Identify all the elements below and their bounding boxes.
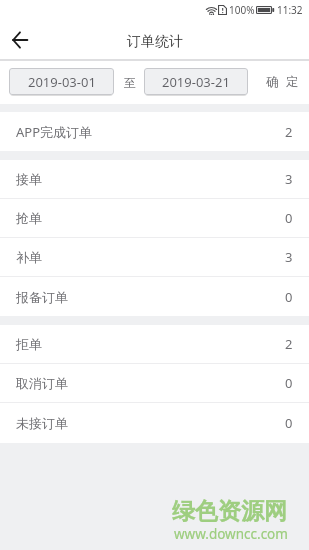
staticText: 3 — [285, 170, 293, 188]
button[interactable]: APP完成订单 — [0, 112, 309, 151]
button[interactable]: 报备订单 — [0, 277, 309, 316]
button[interactable]: 取消订单 — [0, 364, 309, 403]
staticText: 取消订单 — [16, 375, 68, 391]
button[interactable]: 未接订单 — [0, 403, 309, 443]
staticText: 至 — [124, 75, 136, 90]
staticText: 2019-03-01 — [28, 73, 96, 91]
staticText: 订单统计 — [127, 33, 183, 51]
staticText: 拒单 — [16, 336, 42, 352]
staticText: 未接订单 — [16, 415, 68, 431]
staticText: 3 — [285, 248, 293, 266]
button[interactable]: 接单 — [0, 160, 309, 199]
button[interactable]: Back — [8, 28, 32, 52]
staticText: 2 — [285, 335, 293, 353]
staticText: 绿色资源网 — [172, 497, 287, 526]
staticText: 0 — [285, 414, 293, 432]
staticText: 100% — [229, 3, 255, 17]
button[interactable]: 2019-03-01 — [9, 68, 114, 95]
staticText: 抢单 — [16, 210, 42, 226]
staticText: 定 — [286, 74, 299, 90]
staticText: APP完成订单 — [16, 123, 93, 141]
staticText: 报备订单 — [16, 289, 68, 305]
staticText: 2019-03-21 — [162, 73, 230, 91]
button[interactable]: 确 — [248, 68, 309, 96]
staticText: 11:32 — [277, 3, 303, 17]
staticText: 补单 — [16, 249, 42, 265]
staticText: 确 — [266, 74, 279, 90]
staticText: www.downcc.com — [174, 525, 288, 543]
button[interactable]: 拒单 — [0, 325, 309, 364]
staticText: 0 — [285, 209, 293, 227]
button[interactable]: 2019-03-21 — [144, 68, 248, 95]
button[interactable]: 抢单 — [0, 199, 309, 238]
staticText: 0 — [285, 374, 293, 392]
staticText: 2 — [285, 123, 293, 141]
button[interactable]: 补单 — [0, 238, 309, 277]
staticText: 0 — [285, 288, 293, 306]
staticText: 接单 — [16, 171, 42, 187]
